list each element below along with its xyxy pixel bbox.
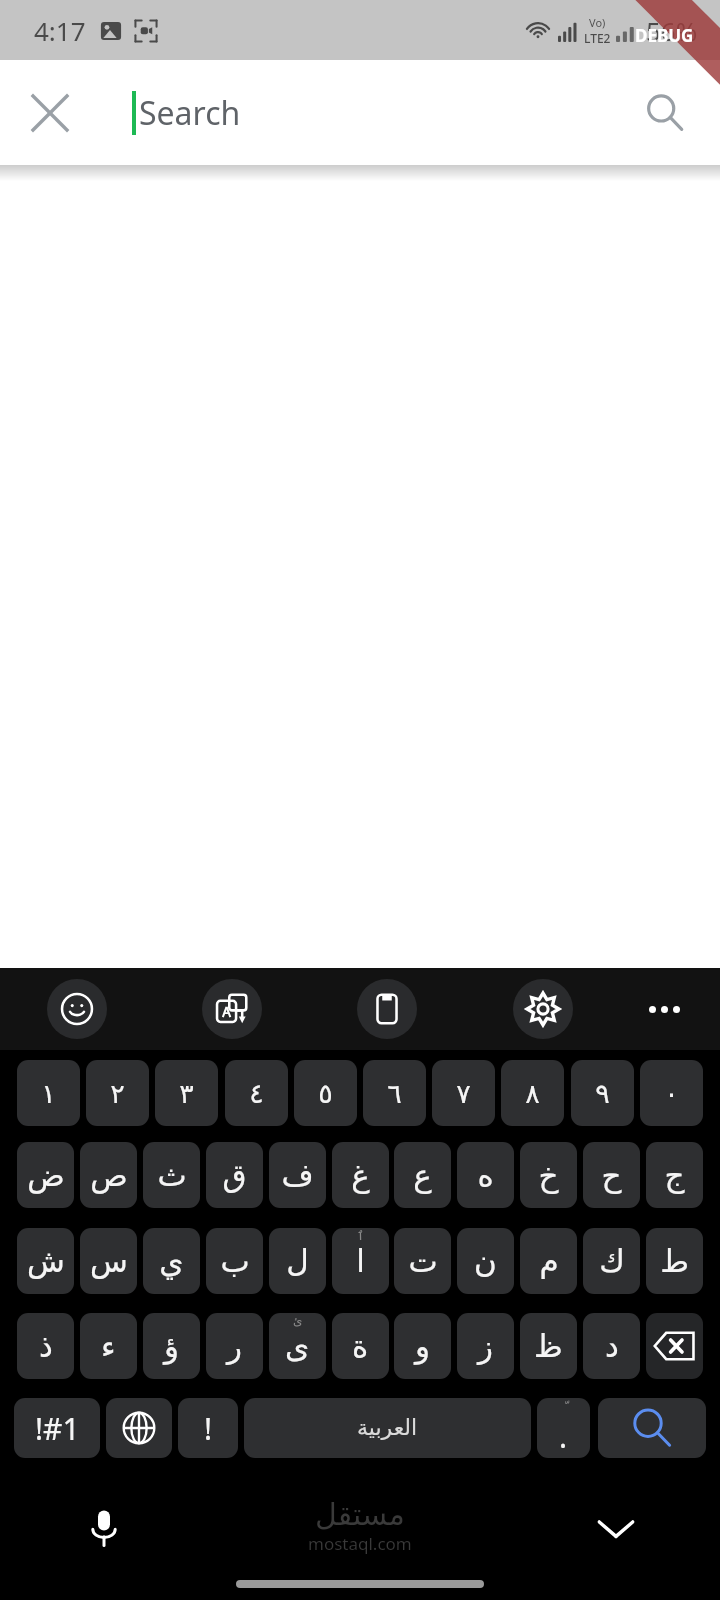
staticText: ط <box>660 1243 689 1279</box>
button[interactable]: Voice input <box>68 1492 140 1564</box>
staticText: مستقل <box>315 1497 405 1532</box>
button[interactable]: ٠ <box>640 1060 703 1126</box>
button[interactable]: Translate <box>202 979 262 1039</box>
staticText: ر <box>227 1328 242 1364</box>
button[interactable]: ٨ <box>501 1060 564 1126</box>
button[interactable]: Backspace <box>646 1313 703 1379</box>
button[interactable]: Search <box>632 80 698 146</box>
button[interactable]: ! <box>178 1398 238 1458</box>
button[interactable]: ج <box>646 1142 703 1208</box>
staticText: ؤ <box>164 1328 179 1364</box>
button[interactable]: ف <box>269 1142 326 1208</box>
button[interactable]: ٦ <box>363 1060 426 1126</box>
button[interactable]: م <box>520 1228 577 1294</box>
staticText: ج <box>664 1157 685 1193</box>
staticText: غ <box>351 1157 370 1193</box>
staticText: ء <box>101 1328 116 1364</box>
button[interactable]: ع <box>394 1142 451 1208</box>
button[interactable]: Hide keyboard <box>580 1492 652 1564</box>
button[interactable]: ر <box>206 1313 263 1379</box>
button[interactable]: Emoji <box>47 979 107 1039</box>
staticText: ١ <box>41 1078 56 1109</box>
button[interactable]: ت <box>394 1228 451 1294</box>
staticText: خ <box>538 1157 559 1193</box>
button[interactable]: ذ <box>17 1313 74 1379</box>
button[interactable]: ة <box>332 1313 389 1379</box>
button[interactable]: د <box>583 1313 640 1379</box>
button[interactable]: ى <box>269 1313 326 1379</box>
button[interactable]: ٣ <box>155 1060 218 1126</box>
button[interactable]: ص <box>80 1142 137 1208</box>
button[interactable]: ث <box>143 1142 200 1208</box>
button[interactable]: ل <box>269 1228 326 1294</box>
staticText: ت <box>408 1243 438 1279</box>
button[interactable]: خ <box>520 1142 577 1208</box>
button[interactable]: !#1 <box>14 1398 100 1458</box>
staticText: ئ <box>293 1314 303 1328</box>
button[interactable]: و <box>394 1313 451 1379</box>
staticText: ع <box>413 1157 432 1193</box>
button[interactable]: ٥ <box>294 1060 357 1126</box>
staticText: 4:17 <box>34 13 86 48</box>
button[interactable]: ط <box>646 1228 703 1294</box>
staticText: ه <box>477 1157 494 1193</box>
staticText: ٢ <box>110 1078 125 1109</box>
button[interactable]: ي <box>143 1228 200 1294</box>
button[interactable]: Search <box>598 1398 706 1458</box>
button[interactable]: ح <box>583 1142 640 1208</box>
staticText: ٱ <box>357 1229 365 1243</box>
button[interactable]: ظ <box>520 1313 577 1379</box>
staticText: م <box>539 1243 559 1279</box>
staticText: ي <box>159 1243 184 1279</box>
button[interactable]: ق <box>206 1142 263 1208</box>
staticText: LTE2 <box>584 30 611 46</box>
button[interactable]: ٩ <box>571 1060 634 1126</box>
button[interactable]: ؤ <box>143 1313 200 1379</box>
button[interactable]: ء <box>80 1313 137 1379</box>
button[interactable]: ا <box>332 1228 389 1294</box>
button[interactable]: ١ <box>17 1060 80 1126</box>
button[interactable]: ض <box>17 1142 74 1208</box>
button[interactable]: Close search <box>18 81 82 145</box>
button[interactable]: ه <box>457 1142 514 1208</box>
button[interactable]: العربية <box>244 1398 531 1458</box>
staticText: ص <box>90 1157 128 1193</box>
button[interactable]: س <box>80 1228 137 1294</box>
staticText: ٨ <box>525 1078 540 1109</box>
staticText: ٥ <box>318 1078 333 1109</box>
staticText: ف <box>281 1157 314 1193</box>
staticText: ز <box>478 1328 493 1364</box>
button[interactable]: ش <box>17 1228 74 1294</box>
staticText: ش <box>27 1243 65 1279</box>
button[interactable]: Clipboard <box>357 979 417 1039</box>
staticText: ب <box>220 1243 250 1279</box>
staticText: ل <box>286 1243 309 1279</box>
staticText: DEBUG <box>635 24 694 47</box>
button[interactable]: ن <box>457 1228 514 1294</box>
button[interactable]: More options <box>634 979 694 1039</box>
button[interactable]: غ <box>332 1142 389 1208</box>
button[interactable]: ك <box>583 1228 640 1294</box>
button[interactable]: . <box>537 1398 590 1458</box>
staticText: ن <box>474 1243 497 1279</box>
staticText: ض <box>27 1157 65 1193</box>
staticText: ك <box>599 1243 625 1279</box>
button[interactable]: ز <box>457 1313 514 1379</box>
staticText: ٦ <box>387 1078 402 1109</box>
button[interactable]: ب <box>206 1228 263 1294</box>
staticText: !#1 <box>35 1408 80 1449</box>
button[interactable]: Settings <box>513 979 573 1039</box>
button[interactable]: ٧ <box>432 1060 495 1126</box>
button[interactable]: ٢ <box>86 1060 149 1126</box>
staticText: ٣ <box>179 1078 194 1109</box>
staticText: ى <box>285 1328 310 1364</box>
staticText: د <box>605 1328 619 1364</box>
staticText: ٩ <box>595 1078 610 1109</box>
staticText: mostaql.com <box>308 1532 412 1555</box>
staticText: ٠ <box>664 1078 679 1109</box>
staticText: و <box>415 1328 430 1364</box>
button[interactable]: Change keyboard language <box>106 1398 172 1458</box>
staticText: . <box>559 1416 568 1457</box>
staticText: ٤ <box>249 1078 264 1109</box>
button[interactable]: ٤ <box>225 1060 288 1126</box>
